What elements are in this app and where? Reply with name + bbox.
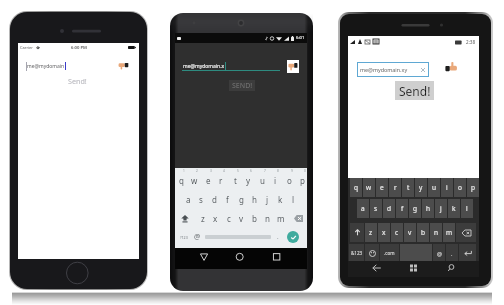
staticText: 9 [291, 169, 293, 173]
staticText: y [419, 183, 423, 192]
button[interactable]: o [284, 172, 294, 188]
staticText: l [466, 204, 468, 213]
button[interactable]: v [404, 223, 416, 242]
button[interactable]: Shift [350, 223, 364, 242]
staticText: w [366, 183, 372, 192]
button[interactable]: Enter [283, 229, 303, 245]
button[interactable]: i [441, 178, 453, 197]
staticText: f [226, 194, 229, 205]
button[interactable]: b [417, 223, 429, 242]
button[interactable]: u [428, 178, 440, 197]
button[interactable]: . [273, 229, 283, 245]
button[interactable]: c [223, 209, 234, 227]
button[interactable]: Shift [179, 209, 191, 227]
staticText: 6:00 PM [71, 45, 87, 51]
button[interactable]: n [262, 209, 273, 227]
button[interactable]: y [415, 178, 427, 197]
button[interactable]: Emoji [365, 244, 379, 262]
button[interactable]: r [389, 178, 401, 197]
button[interactable]: o [454, 178, 466, 197]
staticText: @ [437, 250, 442, 257]
button[interactable]: h [248, 190, 260, 208]
button[interactable]: l [287, 190, 299, 208]
button[interactable]: SEND! [229, 80, 255, 91]
button[interactable]: f [396, 199, 408, 218]
button[interactable]: Send! [18, 74, 139, 88]
button[interactable]: &123 [349, 244, 364, 262]
staticText: n [265, 213, 270, 224]
staticText: 2:38 [466, 39, 476, 45]
button[interactable]: @ [191, 229, 203, 245]
button[interactable]: x [378, 223, 390, 242]
staticText: r [219, 175, 223, 186]
button[interactable]: i [270, 172, 280, 188]
button[interactable]: q [176, 172, 186, 188]
staticText: .com [384, 250, 395, 256]
button[interactable]: y [243, 172, 253, 188]
button[interactable]: j [435, 199, 447, 218]
button[interactable]: s [195, 190, 207, 208]
staticText: j [266, 194, 269, 205]
staticText: . [277, 233, 279, 241]
button[interactable] [400, 244, 432, 262]
staticText: 0 [304, 169, 306, 173]
button[interactable]: a [182, 190, 194, 208]
staticText: h [426, 204, 431, 213]
button[interactable]: Backspace [292, 209, 304, 227]
staticText: v [239, 213, 244, 224]
button[interactable]: r [216, 172, 226, 188]
button[interactable]: g [409, 199, 421, 218]
button[interactable]: g [235, 190, 247, 208]
button[interactable]: v [236, 209, 247, 227]
button[interactable]: x [210, 209, 221, 227]
button[interactable]: n [430, 223, 442, 242]
button[interactable]: l [461, 199, 473, 218]
button[interactable]: d [383, 199, 395, 218]
staticText: 7 [264, 169, 266, 173]
button[interactable]: m [275, 209, 286, 227]
button[interactable]: d [208, 190, 220, 208]
button[interactable]: k [274, 190, 286, 208]
button[interactable]: p [467, 178, 479, 197]
button[interactable]: ?123 [177, 229, 191, 245]
button[interactable]: w [189, 172, 199, 188]
button[interactable]: t [402, 178, 414, 197]
staticText: g [413, 204, 417, 213]
staticText: i [446, 183, 448, 192]
staticText: 3 [210, 169, 212, 173]
button[interactable]: q [350, 178, 362, 197]
button[interactable]: j [261, 190, 273, 208]
button[interactable]: z [197, 209, 208, 227]
button[interactable]: s [370, 199, 382, 218]
button[interactable]: @ [433, 244, 445, 262]
button[interactable]: e [376, 178, 388, 197]
button[interactable]: .com [380, 244, 399, 262]
button[interactable]: h [422, 199, 434, 218]
staticText: n [434, 228, 439, 237]
button[interactable]: z [365, 223, 377, 242]
button[interactable]: b [249, 209, 260, 227]
staticText: e [206, 175, 211, 186]
button[interactable]: me@mydomain.x [175, 59, 307, 73]
staticText: ?123 [180, 235, 188, 240]
button[interactable]: t [230, 172, 240, 188]
button[interactable]: k [448, 199, 460, 218]
button[interactable]: p [297, 172, 307, 188]
button[interactable]: f [221, 190, 233, 208]
button[interactable]: me@mydomain.xy [357, 62, 429, 77]
button[interactable]: Send! [395, 81, 434, 100]
staticText: me@mydomain.xy [360, 66, 408, 73]
staticText: e [380, 183, 384, 192]
button[interactable]: Backspace [456, 223, 476, 242]
button[interactable]: Enter [459, 244, 476, 262]
button[interactable]: me@mydomain [18, 59, 139, 73]
button[interactable]: m [443, 223, 455, 242]
button[interactable] [203, 229, 273, 245]
button[interactable]: c [391, 223, 403, 242]
button[interactable]: a [357, 199, 369, 218]
staticText: j [440, 204, 442, 213]
button[interactable]: w [363, 178, 375, 197]
button[interactable]: . [446, 244, 458, 262]
button[interactable]: e [203, 172, 213, 188]
button[interactable]: u [257, 172, 267, 188]
